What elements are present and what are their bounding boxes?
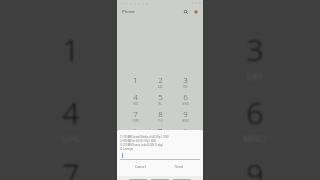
staticText: 3) 250MB Kuota Lokal 4 GB (3 day) (120, 143, 164, 147)
button[interactable]: Search (182, 8, 189, 15)
staticText: Phone (122, 9, 135, 15)
staticText: 9 (183, 108, 188, 119)
button[interactable]: Send (173, 163, 185, 170)
staticText: Send (175, 164, 183, 169)
staticText: 4 (62, 91, 80, 131)
staticText: PQRS (132, 119, 139, 123)
staticText: GHI (133, 102, 138, 106)
staticText: ABC (154, 69, 172, 83)
button[interactable]: 5 (128, 91, 194, 153)
button[interactable]: 6 (220, 91, 286, 153)
staticText: 8 (154, 153, 172, 180)
staticText: 6 (246, 91, 264, 131)
button[interactable]: 2 (128, 28, 194, 91)
staticText: 8 (158, 108, 163, 119)
button[interactable]: Account (192, 8, 199, 15)
staticText: 4) Lainnya (120, 147, 133, 151)
staticText: 1) 100MB Sosial Media di 4G (Rp 1.000) (120, 135, 169, 139)
staticText: 1 (133, 74, 138, 85)
staticText: 6 (183, 91, 188, 102)
button[interactable]: 0 (151, 125, 169, 142)
staticText: 3 (246, 28, 264, 69)
staticText: + (159, 136, 161, 140)
staticText: 5 (154, 91, 172, 131)
staticText: 7 (62, 153, 80, 180)
staticText: # (182, 125, 188, 136)
button[interactable]: * (126, 125, 144, 142)
staticText: WXYZ (182, 119, 189, 123)
button[interactable]: 6 (176, 91, 194, 108)
button[interactable]: 3 (176, 74, 194, 91)
staticText: TUV (158, 119, 163, 123)
staticText: ABC (158, 85, 163, 89)
staticText: Cancel (135, 164, 146, 169)
button[interactable]: 8 (151, 108, 169, 125)
staticText: JKL (158, 102, 162, 106)
staticText: DEF (183, 85, 188, 89)
button[interactable]: 9 (176, 108, 194, 125)
button[interactable]: 8 (128, 153, 194, 180)
button[interactable]: 1 (126, 74, 144, 91)
staticText: 3 (183, 74, 188, 85)
button[interactable]: 7 (36, 153, 102, 180)
staticText: 1 (62, 28, 80, 69)
button[interactable]: # (176, 125, 194, 142)
button[interactable]: 9 (220, 153, 286, 180)
button[interactable]: 3 (220, 28, 286, 91)
button[interactable]: 5 (151, 91, 169, 108)
staticText: 9 (246, 153, 264, 180)
button[interactable]: 4 (36, 91, 102, 153)
staticText: 2) 500MB di 2G/3G (Rp1.000) (120, 139, 157, 143)
staticText: JKL (154, 131, 168, 146)
button[interactable]: Cancel (133, 163, 148, 170)
staticText: 7 (133, 108, 138, 119)
staticText: 5 (158, 91, 163, 102)
button[interactable]: 4 (126, 91, 144, 108)
staticText: * (133, 125, 138, 136)
button[interactable]: 7 (126, 108, 144, 125)
staticText: 0 (158, 125, 163, 136)
staticText: 4 (133, 91, 138, 102)
button[interactable]: 2 (151, 74, 169, 91)
staticText: MNO (182, 102, 189, 106)
staticText: 2 (158, 74, 163, 85)
